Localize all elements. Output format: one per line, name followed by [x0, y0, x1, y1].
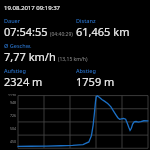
- button[interactable]: Dauer: [4, 17, 74, 39]
- staticText: 19.08.2017 09:19:37: [4, 4, 61, 12]
- button[interactable]: Distanz: [76, 17, 130, 39]
- button[interactable]: Abstieg: [76, 67, 115, 89]
- staticText: 61,465 km: [76, 24, 130, 39]
- staticText: 1759 m: [76, 74, 115, 89]
- button[interactable]: Ø Geschw.: [4, 42, 88, 64]
- staticText: Aufstieg: [4, 67, 26, 74]
- staticText: (04:40:29): [50, 31, 73, 38]
- staticText: 07:54:55: [4, 24, 48, 39]
- staticText: Abstieg: [76, 67, 96, 74]
- staticText: (13,15 km/h): [58, 56, 88, 63]
- staticText: Distanz: [76, 17, 96, 24]
- staticText: 7,77 km/h: [4, 49, 56, 64]
- staticText: 726: [10, 113, 17, 118]
- staticText: 450: [10, 139, 17, 144]
- staticText: Ø Geschw.: [4, 42, 32, 49]
- staticText: 1170: [8, 93, 17, 96]
- staticText: 2324 m: [4, 74, 43, 89]
- staticText: Dauer: [4, 17, 21, 24]
- button[interactable]: Elevation profile chart: [0, 93, 150, 150]
- button[interactable]: Aufstieg: [4, 67, 74, 89]
- staticText: 504: [10, 126, 17, 131]
- staticText: 948: [10, 100, 17, 105]
